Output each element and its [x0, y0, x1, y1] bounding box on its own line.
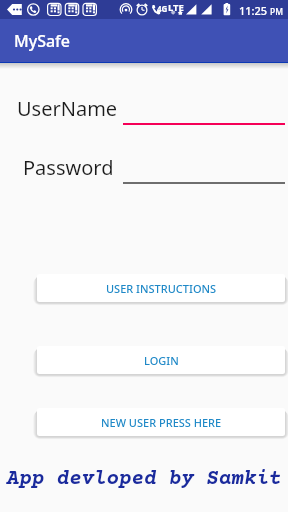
button[interactable]: NEW USER PRESS HERE: [37, 408, 285, 436]
staticText: LTE: [168, 1, 184, 14]
staticText: PM: [270, 6, 283, 18]
staticText: USER INSTRUCTIONS: [106, 281, 217, 296]
staticText: 4G: [157, 3, 168, 14]
staticText: App devloped by Samkit: [0, 468, 288, 491]
staticText: UserName: [17, 95, 118, 122]
staticText: 11:25: [239, 3, 268, 18]
button[interactable]: Password input field: [10, 152, 288, 188]
staticText: Password: [23, 154, 114, 181]
staticText: MySafe: [14, 30, 70, 52]
button[interactable]: LOGIN: [37, 346, 285, 374]
staticText: NEW USER PRESS HERE: [101, 415, 222, 430]
button[interactable]: USER INSTRUCTIONS: [37, 274, 285, 302]
staticText: LOGIN: [144, 353, 179, 368]
button[interactable]: UserName input field: [10, 92, 288, 128]
